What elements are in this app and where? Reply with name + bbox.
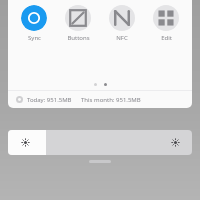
button[interactable]: Sync (12, 4, 56, 43)
staticText: This month: 951.5MB (81, 96, 141, 104)
other: Edit (153, 5, 179, 31)
button[interactable]: NFC (100, 4, 144, 43)
button[interactable]: Edit (144, 4, 188, 43)
staticText: NFC (116, 34, 128, 42)
other: NFC (109, 5, 135, 31)
staticText: Edit (161, 34, 172, 42)
button[interactable]: Buttons (56, 4, 100, 43)
other: Sync (21, 5, 47, 31)
staticText: Today: 951.5MB (27, 96, 72, 104)
staticText: Sync (28, 34, 41, 42)
button[interactable]: Brightness (8, 130, 192, 155)
button[interactable]: Today: 951.5MB (8, 91, 192, 108)
other: Buttons (65, 5, 91, 31)
staticText: Buttons (67, 34, 90, 42)
